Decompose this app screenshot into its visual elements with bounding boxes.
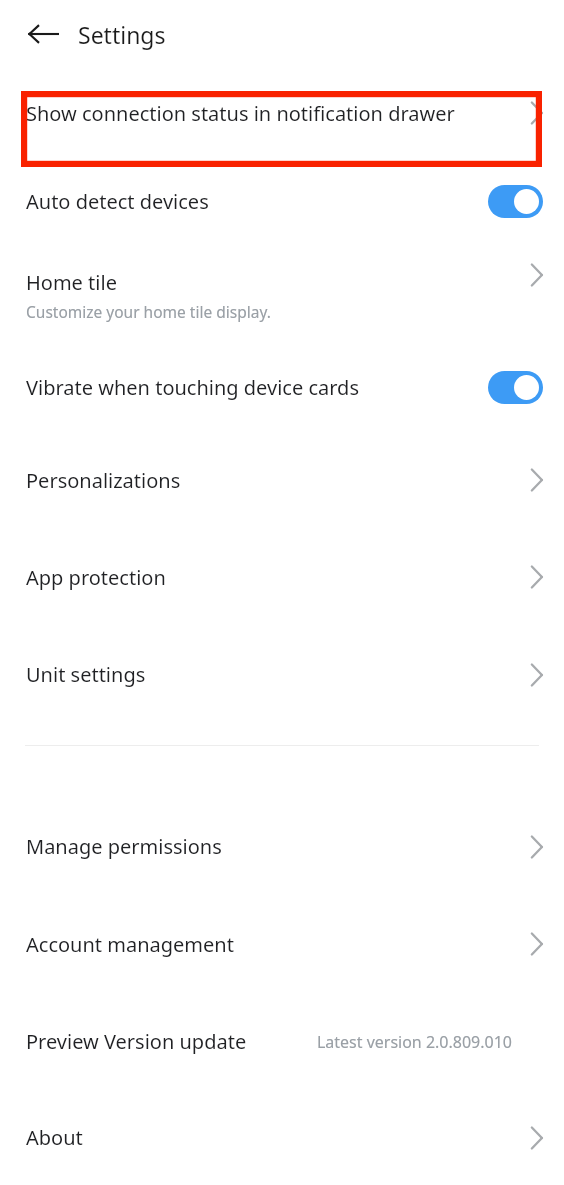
staticText: Preview Version update [26,1028,247,1055]
staticText: Customize your home tile display. [26,301,271,322]
button[interactable]: App protection [0,528,564,626]
staticText: About [26,1124,83,1151]
button[interactable]: Account management [0,895,564,993]
staticText: Vibrate when touching device cards [26,374,359,401]
button[interactable]: Manage permissions [0,798,564,895]
staticText: Personalizations [26,467,181,494]
button[interactable]: Auto detect devices [0,158,564,245]
staticText: Account management [26,931,234,958]
button[interactable]: Show connection status in notification d… [0,68,564,158]
button[interactable]: Back [24,15,62,53]
staticText: Latest version 2.0.809.010 [316,1031,512,1053]
button[interactable]: Preview Version update [0,993,564,1090]
staticText: App protection [26,564,166,591]
staticText: Unit settings [26,661,146,688]
staticText: Home tile [26,269,117,296]
button[interactable]: Personalizations [0,432,564,528]
button[interactable]: About [0,1090,564,1185]
button[interactable]: Home tile [0,245,564,342]
other: Toggle on [488,371,543,404]
staticText: Manage permissions [26,833,222,860]
staticText: Show connection status in notification d… [26,100,455,127]
button[interactable]: Vibrate when touching device cards [0,342,564,432]
staticText: Auto detect devices [26,188,209,215]
other: Toggle on [488,185,543,218]
staticText: Settings [78,19,166,50]
button[interactable]: Unit settings [0,626,564,723]
